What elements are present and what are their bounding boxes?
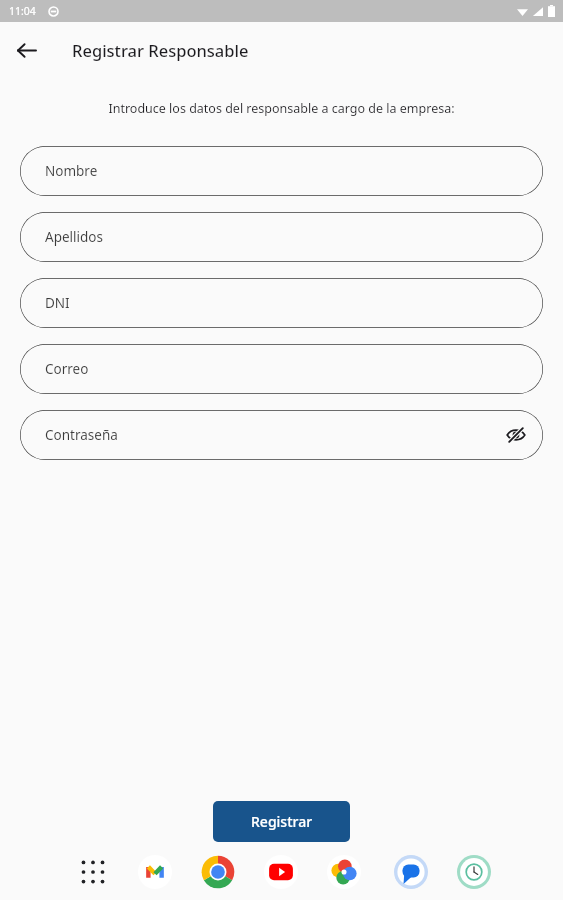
button[interactable]: Nombre (20, 146, 543, 196)
button[interactable]: Messages (391, 852, 431, 892)
button[interactable]: Correo (20, 344, 543, 394)
staticText: Nombre (45, 162, 98, 180)
button[interactable]: Photos (324, 852, 364, 892)
staticText: Registrar Responsable (72, 39, 249, 61)
staticText: DNI (45, 294, 70, 312)
button[interactable]: Apellidos (20, 212, 543, 262)
button[interactable]: Registrar (213, 801, 350, 842)
button[interactable]: Contraseña (20, 410, 543, 460)
button[interactable]: YouTube (261, 852, 301, 892)
staticText: 11:04 (9, 4, 36, 18)
staticText: Correo (45, 360, 89, 378)
staticText: Registrar (251, 812, 313, 831)
button[interactable]: DNI (20, 278, 543, 328)
button[interactable]: Chrome (198, 852, 238, 892)
staticText: Contraseña (45, 426, 118, 444)
button[interactable]: Back (6, 30, 46, 70)
button[interactable]: Gmail (135, 852, 175, 892)
button[interactable]: Apps (73, 852, 113, 892)
staticText: Introduce los datos del responsable a ca… (20, 100, 543, 117)
button[interactable]: Clock (454, 852, 494, 892)
staticText: Apellidos (45, 228, 103, 246)
button[interactable]: Toggle password visibility (500, 419, 532, 451)
